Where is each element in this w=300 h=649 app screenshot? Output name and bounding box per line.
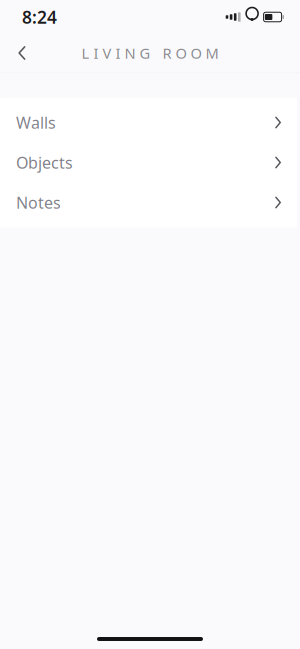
button[interactable]: Objects bbox=[0, 142, 297, 182]
staticText: L I V I N G R O O M bbox=[81, 43, 218, 63]
staticText: Notes bbox=[16, 192, 61, 213]
staticText: Walls bbox=[16, 112, 56, 133]
button[interactable]: Notes bbox=[0, 182, 297, 222]
button[interactable]: Walls bbox=[0, 102, 297, 142]
staticText: Objects bbox=[16, 152, 73, 173]
button[interactable]: Back bbox=[2, 34, 42, 72]
staticText: 8:24 bbox=[22, 5, 57, 28]
